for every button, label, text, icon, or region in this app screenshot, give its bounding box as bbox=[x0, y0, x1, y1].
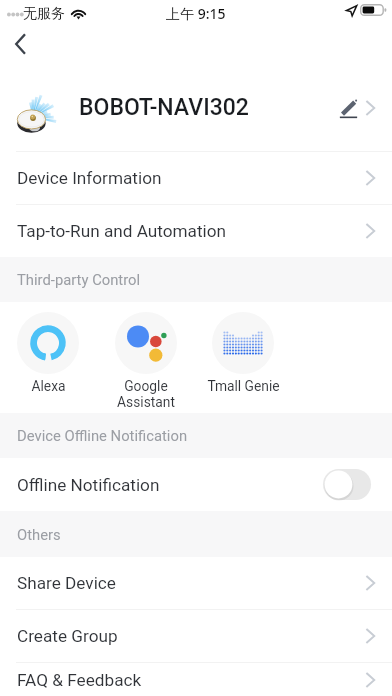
button[interactable]: BOBOT-NAVI302 bbox=[0, 64, 392, 151]
staticText: Alexa bbox=[31, 378, 66, 394]
staticText: Offline Notification bbox=[17, 475, 160, 495]
button[interactable]: Tmall Genie bbox=[195, 312, 291, 394]
staticText: Device Information bbox=[17, 168, 162, 188]
staticText: Tap-to-Run and Automation bbox=[17, 221, 227, 241]
staticText: FAQ & Feedback bbox=[17, 670, 142, 690]
button[interactable]: Alexa bbox=[0, 312, 96, 394]
button[interactable]: Back bbox=[5, 28, 37, 60]
staticText: Others bbox=[17, 526, 61, 543]
button[interactable]: FAQ & Feedback bbox=[0, 663, 392, 696]
button[interactable]: Google Assistant bbox=[98, 312, 194, 411]
staticText: Tmall Genie bbox=[207, 378, 280, 394]
staticText: 无服务 bbox=[23, 5, 65, 23]
staticText: Third-party Control bbox=[17, 271, 141, 288]
staticText: Google Assistant bbox=[117, 378, 175, 411]
staticText: Share Device bbox=[17, 573, 116, 593]
button[interactable]: Offline notification toggle bbox=[323, 469, 371, 500]
staticText: 上午 9:15 bbox=[166, 4, 226, 23]
button[interactable]: Device Information bbox=[0, 152, 392, 204]
staticText: BOBOT-NAVI302 bbox=[79, 94, 249, 121]
staticText: Create Group bbox=[17, 626, 118, 646]
button[interactable]: Create Group bbox=[0, 610, 392, 662]
button[interactable]: Rename device bbox=[336, 96, 360, 120]
button[interactable]: Share Device bbox=[0, 557, 392, 609]
button[interactable]: Tap-to-Run and Automation bbox=[0, 205, 392, 257]
staticText: Device Offline Notification bbox=[17, 427, 188, 444]
